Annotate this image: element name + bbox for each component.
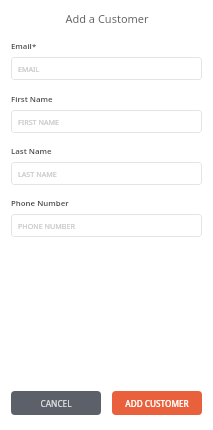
staticText: * (32, 41, 37, 52)
staticText: Last Name (11, 146, 52, 157)
staticText: FIRST NAME (18, 117, 60, 127)
staticText: Add a Customer (65, 11, 149, 26)
staticText: EMAIL (18, 64, 40, 74)
staticText: First Name (11, 94, 53, 105)
staticText: Phone Number (11, 198, 69, 209)
staticText: ADD CUSTOMER (125, 398, 189, 409)
staticText: LAST NAME (18, 169, 57, 179)
staticText: Email (11, 41, 32, 52)
button[interactable]: LAST NAME (11, 162, 202, 185)
button[interactable]: EMAIL (11, 57, 202, 80)
button[interactable]: PHONE NUMBER (11, 214, 202, 237)
button[interactable]: CANCEL (11, 391, 101, 415)
button[interactable]: ADD CUSTOMER (112, 391, 202, 415)
button[interactable]: FIRST NAME (11, 110, 202, 133)
staticText: CANCEL (40, 398, 72, 409)
staticText: PHONE NUMBER (18, 221, 75, 231)
